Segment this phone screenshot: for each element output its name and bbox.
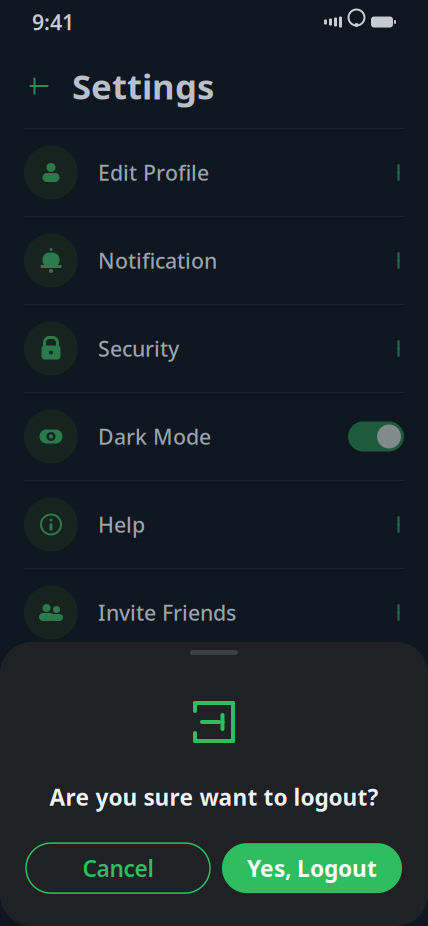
staticText: Cancel xyxy=(82,853,153,883)
button[interactable]: Dark Mode toggle xyxy=(348,421,404,451)
button[interactable]: Cancel xyxy=(26,843,210,893)
staticText: Notification xyxy=(98,246,217,275)
button[interactable]: Help xyxy=(0,481,428,568)
staticText: Yes, Logout xyxy=(247,853,377,883)
staticText: Help xyxy=(98,510,145,539)
button[interactable]: Yes, Logout xyxy=(222,843,402,893)
staticText: Are you sure want to logout? xyxy=(49,782,378,812)
button[interactable]: Notification xyxy=(0,217,428,304)
button[interactable]: Security xyxy=(0,305,428,392)
button[interactable]: Back xyxy=(24,71,54,101)
staticText: 9:41 xyxy=(32,8,74,36)
button[interactable]: Invite Friends xyxy=(0,569,428,656)
staticText: Invite Friends xyxy=(98,598,236,627)
button[interactable]: Edit Profile xyxy=(0,129,428,216)
staticText: Settings xyxy=(72,63,214,109)
staticText: Dark Mode xyxy=(98,422,211,451)
button[interactable]: Dark Mode xyxy=(0,393,428,480)
staticText: Security xyxy=(98,334,179,363)
staticText: Edit Profile xyxy=(98,158,209,187)
